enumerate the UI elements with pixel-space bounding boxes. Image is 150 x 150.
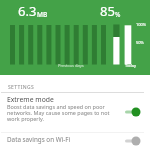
staticText: Previous days [58,63,84,68]
button[interactable]: Extreme mode [0,94,150,132]
staticText: 85 [100,2,115,20]
staticText: Data savings on Wi-Fi [7,135,71,144]
staticText: 100% [136,22,147,27]
staticText: % [115,10,121,19]
staticText: Boost data savings and speed on poor net… [7,103,115,122]
staticText: SETTINGS [8,84,35,91]
button[interactable]: Toggle on [124,107,141,117]
staticText: 6.3 [18,2,37,20]
staticText: MB [37,10,48,19]
button[interactable]: Toggle off [124,136,141,146]
button[interactable]: Data savings on Wi-Fi [0,132,150,150]
staticText: 50% [136,40,144,45]
staticText: Today [125,63,137,68]
staticText: Extreme mode [7,95,54,104]
